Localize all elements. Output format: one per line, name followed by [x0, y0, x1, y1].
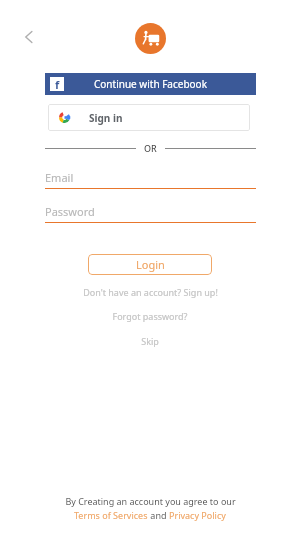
staticText: Terms of Services	[74, 509, 148, 521]
staticText: Don't have an account? Sign up!	[83, 286, 218, 298]
staticText: Skip	[141, 335, 159, 347]
staticText: Email	[45, 170, 74, 185]
staticText: Forgot password?	[112, 310, 188, 322]
staticText: By Creating an account you agree to our	[65, 495, 236, 507]
button[interactable]: Privacy Policy	[169, 509, 226, 521]
button[interactable]: Sign in	[48, 104, 250, 131]
staticText: f	[55, 77, 60, 91]
button[interactable]: Email	[45, 170, 256, 189]
button[interactable]: Password	[45, 204, 256, 223]
staticText: Sign in	[89, 111, 123, 125]
button[interactable]: Forgot password?	[0, 308, 300, 324]
staticText: Continue with Facebook	[94, 77, 207, 91]
staticText: Login	[136, 257, 165, 272]
button[interactable]: Login	[88, 254, 212, 275]
button[interactable]: Back	[12, 20, 46, 54]
button[interactable]: Don't have an account? Sign up!	[0, 284, 300, 300]
staticText: Privacy Policy	[169, 509, 226, 521]
staticText: OR	[144, 142, 157, 154]
button[interactable]: Skip	[0, 333, 300, 349]
staticText: Password	[45, 204, 95, 219]
staticText: and	[148, 509, 169, 521]
button[interactable]: f	[45, 73, 256, 95]
button[interactable]: Terms of Services	[74, 509, 148, 521]
